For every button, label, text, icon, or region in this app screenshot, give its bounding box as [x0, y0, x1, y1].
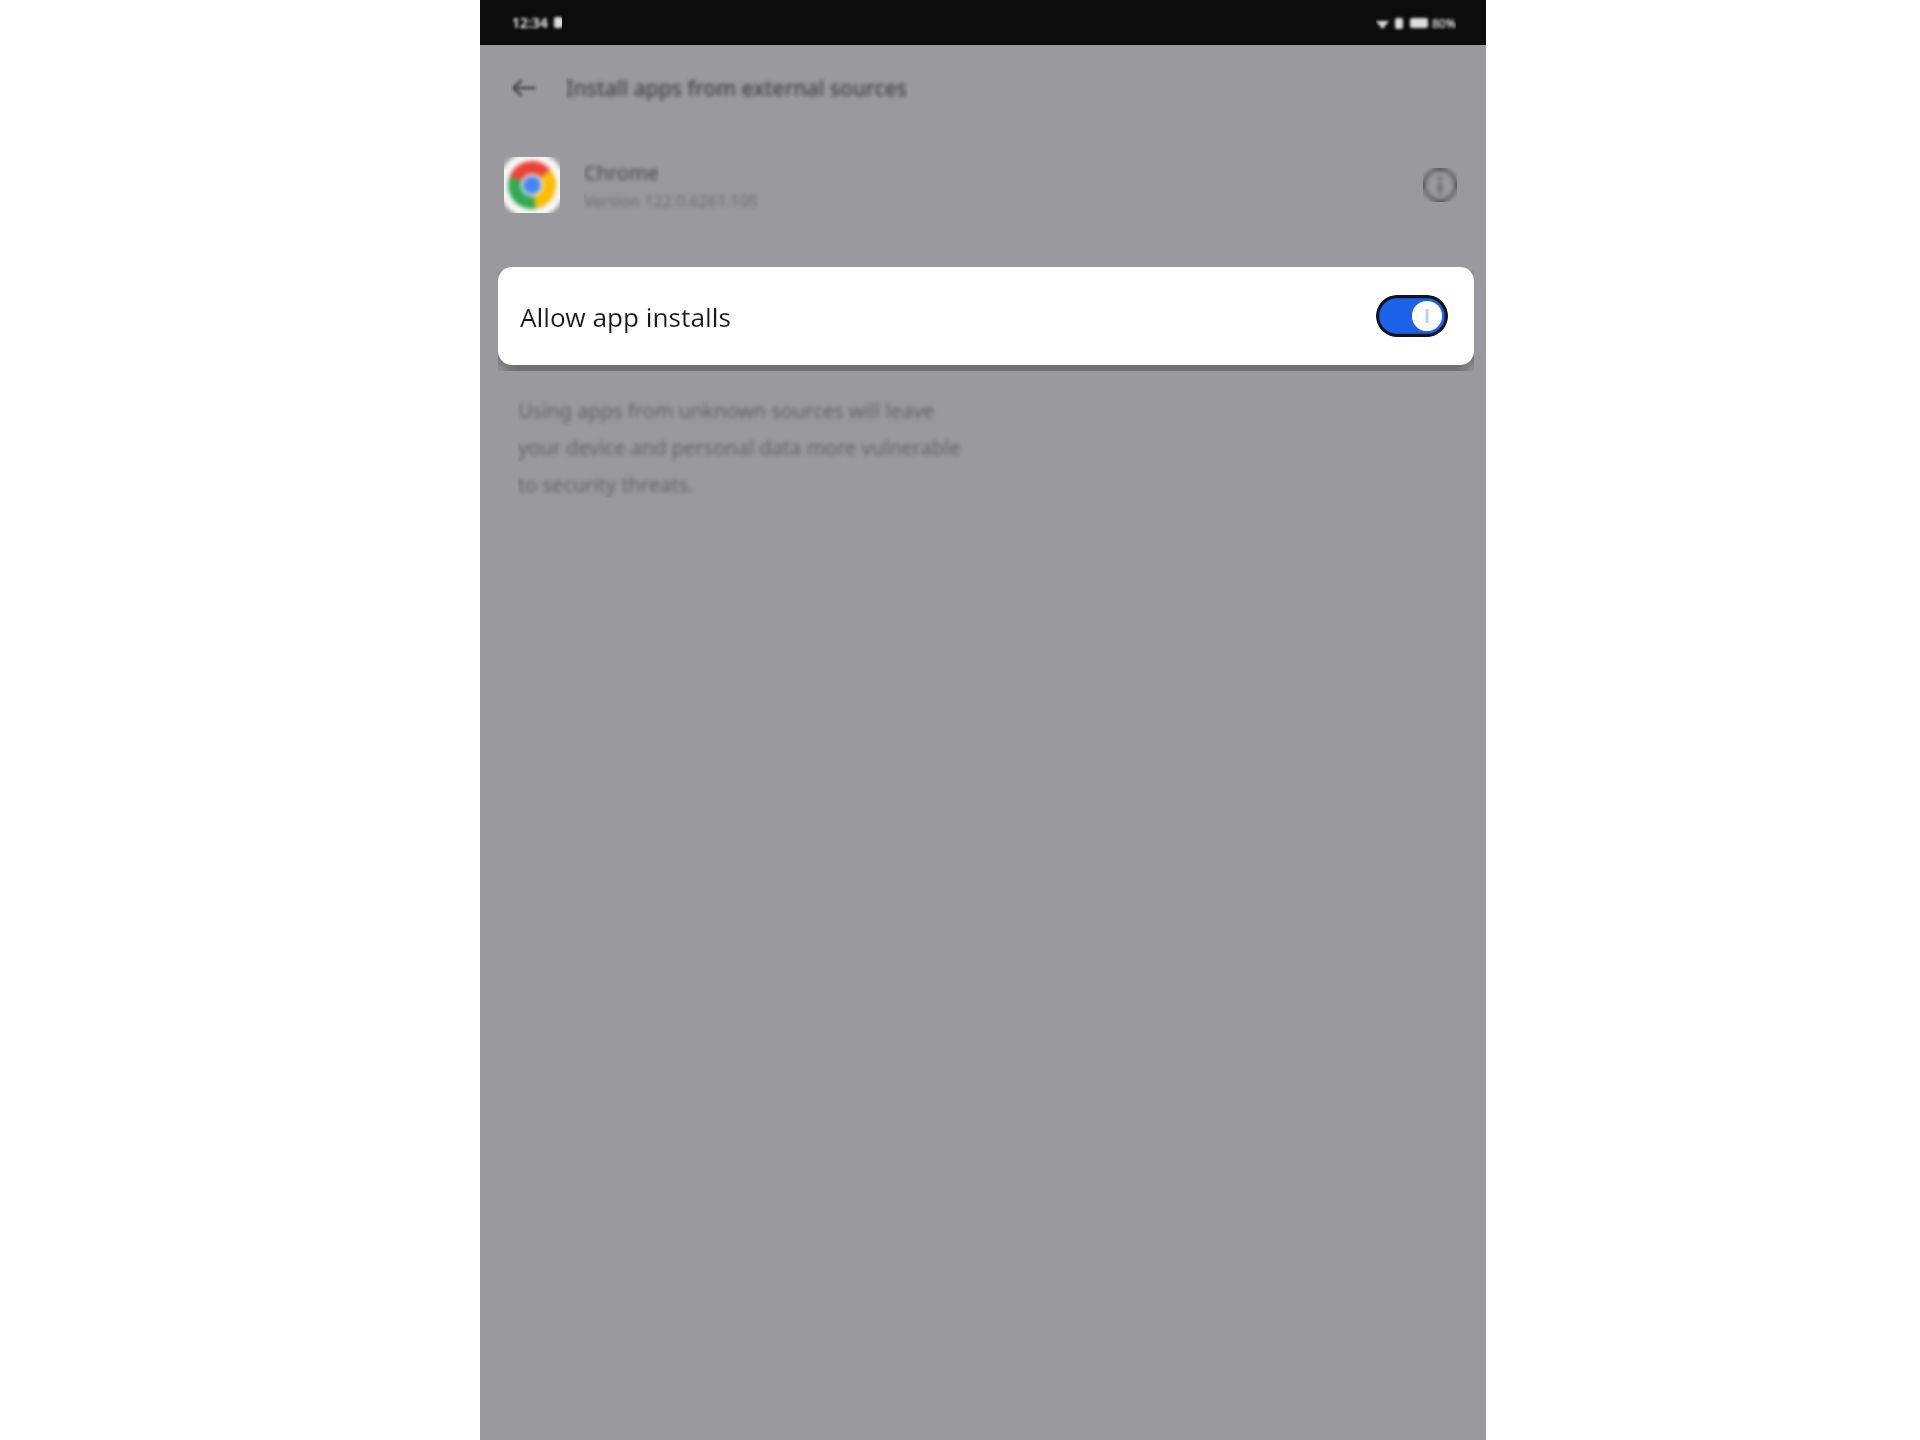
button[interactable]: Chrome	[480, 145, 1486, 225]
staticText: Using apps from unknown sources will lea…	[518, 397, 935, 424]
staticText: Chrome	[584, 159, 659, 186]
staticText: Install apps from external sources	[566, 74, 908, 103]
staticText: to security threats.	[518, 471, 694, 498]
staticText: Allow app installs	[520, 299, 1376, 334]
button[interactable]: Allow app installs	[498, 267, 1474, 365]
button[interactable]: App info	[1416, 161, 1464, 209]
staticText: 80%	[1432, 15, 1456, 31]
staticText: Version 122.0.6261.105	[584, 190, 758, 212]
button[interactable]: Allow app installs toggle, on	[1376, 295, 1448, 337]
button[interactable]: Back	[500, 64, 548, 112]
staticText: your device and personal data more vulne…	[518, 434, 961, 461]
staticText: 12:34	[512, 13, 548, 32]
